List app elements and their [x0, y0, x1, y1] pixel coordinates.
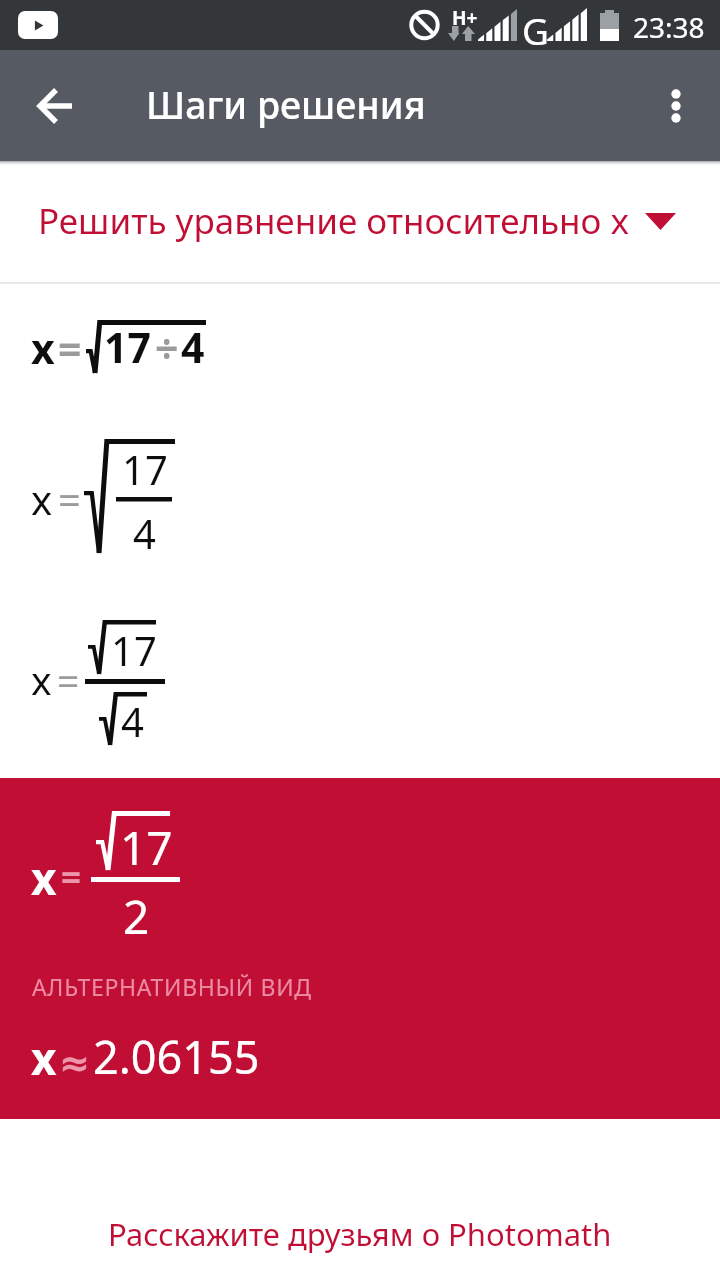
staticText: ≈: [59, 1042, 91, 1085]
staticText: G: [522, 5, 549, 55]
button[interactable]: Back: [23, 73, 89, 139]
staticText: 4: [181, 319, 205, 375]
staticText: 23:38: [633, 8, 705, 46]
staticText: 17: [104, 319, 151, 375]
button[interactable]: More options: [646, 73, 706, 139]
staticText: =: [61, 853, 82, 901]
staticText: x: [31, 1028, 57, 1088]
staticText: Шаги решения: [146, 79, 426, 130]
staticText: ÷: [155, 319, 179, 375]
staticText: x: [31, 653, 52, 706]
staticText: =: [58, 320, 82, 376]
staticText: 2.06155: [93, 1026, 260, 1087]
staticText: =: [57, 653, 80, 706]
button[interactable]: Расскажите друзьям о Photomath: [78, 1157, 642, 1243]
staticText: 4: [121, 694, 144, 748]
staticText: 17: [122, 442, 168, 496]
staticText: 17: [111, 623, 157, 677]
staticText: x: [31, 320, 55, 376]
staticText: =: [58, 472, 81, 526]
button[interactable]: Решить уравнение относительно x: [0, 161, 720, 282]
staticText: АЛЬТЕРНАТИВНЫЙ ВИД: [32, 971, 312, 1002]
staticText: x: [31, 472, 53, 526]
staticText: 2: [123, 885, 150, 948]
staticText: 17: [120, 816, 173, 879]
staticText: Решить уравнение относительно x: [38, 197, 629, 245]
staticText: H+: [452, 5, 478, 31]
staticText: 4: [133, 506, 156, 560]
staticText: x: [31, 848, 57, 908]
